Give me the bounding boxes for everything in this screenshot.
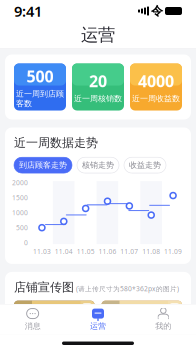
- button[interactable]: 4000: [130, 63, 182, 110]
- button[interactable]: 运营: [65, 305, 131, 334]
- button[interactable]: 店铺宣传图: [14, 301, 94, 341]
- staticText: 运营: [81, 24, 115, 46]
- button[interactable]: 收益走势: [124, 157, 166, 173]
- staticText: 令: [151, 4, 163, 18]
- staticText: 核销走势: [82, 160, 114, 170]
- staticText: 我的: [155, 321, 171, 331]
- staticText: 到店顾客走势: [19, 160, 67, 170]
- staticText: 11.05: [77, 247, 95, 256]
- staticText: 近一周数据走势: [14, 135, 98, 150]
- staticText: 11.04: [55, 247, 73, 256]
- staticText: 4000: [138, 70, 174, 92]
- staticText: 消息: [25, 321, 41, 331]
- staticText: 11.06: [98, 247, 116, 256]
- staticText: (请上传尺寸为580*362px的图片): [76, 284, 179, 293]
- staticText: 近一周核销数: [74, 94, 122, 103]
- staticText: 20: [89, 70, 107, 92]
- staticText: 500: [26, 65, 53, 87]
- button[interactable]: 500: [14, 63, 66, 110]
- staticText: 近一周到店顾客数: [16, 89, 64, 108]
- button[interactable]: 核销走势: [77, 157, 119, 173]
- staticText: 11.09: [164, 247, 182, 256]
- button[interactable]: 我的: [131, 305, 196, 334]
- button[interactable]: 店铺宣传图: [101, 301, 182, 341]
- staticText: 0: [24, 238, 28, 247]
- staticText: 运营: [90, 321, 106, 331]
- staticText: 11.08: [142, 247, 160, 256]
- staticText: 1500: [12, 193, 28, 202]
- button[interactable]: 到店顾客走势: [14, 157, 72, 173]
- staticText: 11.07: [120, 247, 138, 256]
- staticText: 11.03: [33, 247, 51, 256]
- staticText: 500: [16, 223, 28, 232]
- staticText: 近一周收益数: [132, 94, 180, 103]
- staticText: 9:41: [14, 1, 42, 21]
- button[interactable]: 20: [72, 63, 124, 110]
- staticText: 1000: [12, 208, 28, 217]
- staticText: 店铺宣传图: [14, 280, 74, 295]
- staticText: 收益走势: [129, 160, 161, 170]
- staticText: 2000: [12, 178, 28, 187]
- button[interactable]: 消息: [0, 305, 65, 334]
